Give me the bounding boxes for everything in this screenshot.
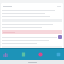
button[interactable] [3, 6, 61, 7]
button[interactable] [2, 43, 62, 44]
button[interactable]: Dashboard [3, 52, 8, 57]
button[interactable]: Reports [21, 52, 26, 57]
button[interactable] [2, 30, 62, 34]
button[interactable] [2, 10, 62, 11]
button[interactable] [2, 27, 62, 28]
button[interactable]: Status [58, 35, 62, 39]
button[interactable] [2, 13, 62, 14]
button[interactable]: Profile [56, 52, 61, 57]
button[interactable]: Status [2, 35, 62, 39]
button[interactable] [2, 24, 62, 25]
button[interactable] [2, 16, 62, 17]
button[interactable]: Favorites [38, 52, 43, 57]
button[interactable] [2, 40, 62, 41]
